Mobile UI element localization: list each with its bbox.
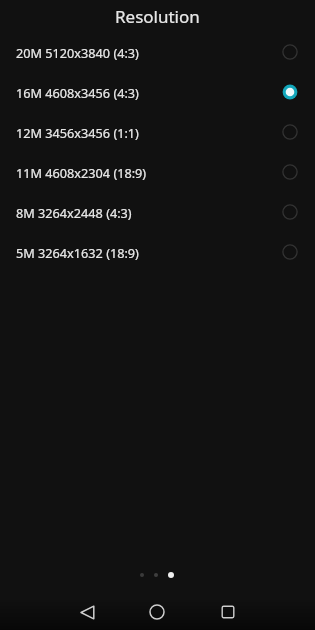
staticText: 8M 3264x2448 (4:3): [16, 204, 265, 221]
button[interactable]: Recent apps: [211, 597, 245, 627]
button[interactable]: Back: [70, 597, 104, 627]
button[interactable]: 20M 5120x3840 (4:3): [0, 32, 315, 72]
staticText: 16M 4608x3456 (4:3): [16, 84, 265, 101]
button[interactable]: 5M 3264x1632 (18:9): [0, 232, 315, 272]
staticText: 12M 3456x3456 (1:1): [16, 124, 265, 141]
staticText: 5M 3264x1632 (18:9): [16, 244, 265, 261]
button[interactable]: 11M 4608x2304 (18:9): [0, 152, 315, 192]
button[interactable]: 8M 3264x2448 (4:3): [0, 192, 315, 232]
button[interactable]: 16M 4608x3456 (4:3): [0, 72, 315, 112]
staticText: 11M 4608x2304 (18:9): [16, 164, 265, 181]
staticText: Resolution: [115, 5, 200, 28]
staticText: 20M 5120x3840 (4:3): [16, 44, 265, 61]
button[interactable]: Home: [140, 597, 174, 627]
button[interactable]: 12M 3456x3456 (1:1): [0, 112, 315, 152]
